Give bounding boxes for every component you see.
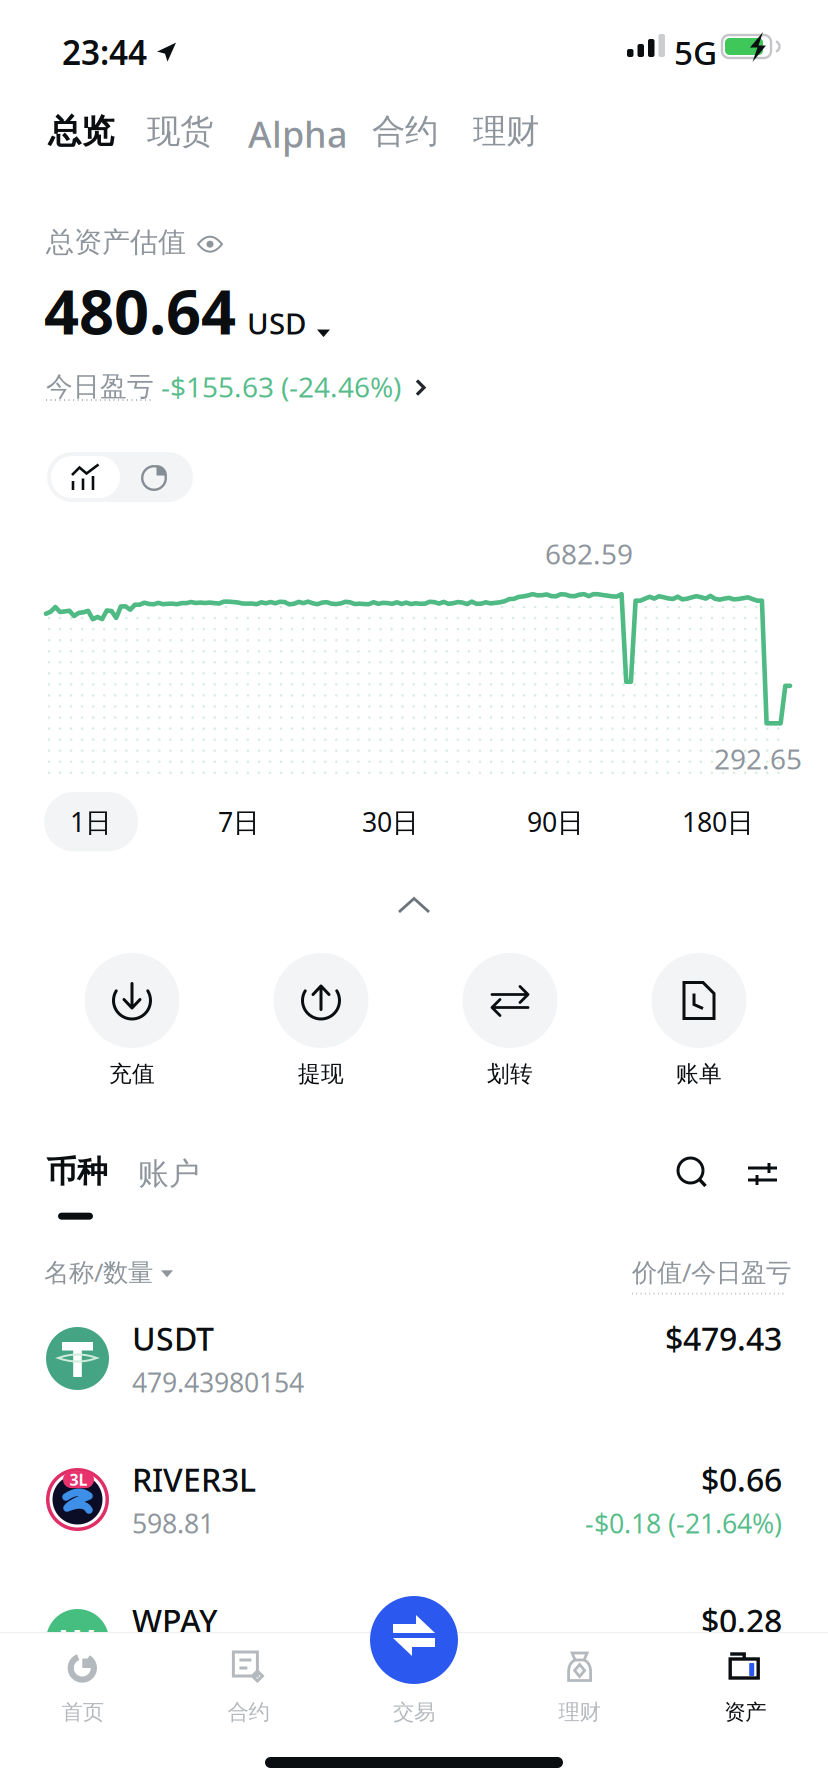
staticText: 90日 — [527, 804, 584, 839]
staticText: 理财 — [473, 111, 539, 152]
button[interactable]: 价值/今日盈亏 — [632, 1255, 791, 1296]
staticText: 3L — [69, 1469, 87, 1490]
staticText: -$0.18 (-21.64%) — [585, 1505, 782, 1541]
button[interactable]: 180日 — [656, 792, 780, 851]
button[interactable]: Filter — [748, 1163, 777, 1185]
button[interactable]: 90日 — [501, 792, 610, 851]
button[interactable]: 充值 — [77, 953, 187, 1088]
button[interactable]: 资产 — [662, 1632, 828, 1792]
button[interactable]: 交易 — [331, 1632, 497, 1792]
button[interactable]: 总览 — [48, 111, 114, 152]
staticText: W — [60, 1617, 94, 1663]
staticText: 币种 — [46, 1153, 108, 1191]
staticText: 充值 — [109, 1060, 155, 1088]
staticText: WPAY — [132, 1599, 218, 1641]
staticText: 现货 — [147, 111, 213, 152]
staticText: 180日 — [682, 804, 754, 839]
button[interactable]: 理财 — [473, 111, 539, 152]
staticText: 交易 — [393, 1699, 435, 1725]
staticText: USDT — [132, 1317, 214, 1359]
staticText: 今日盈亏 — [46, 370, 154, 403]
button[interactable]: Line chart — [51, 456, 120, 498]
button[interactable]: Search — [676, 1156, 706, 1188]
button[interactable]: 现货 — [147, 111, 213, 152]
staticText: 480.64 — [44, 270, 236, 351]
staticText: 账户 — [138, 1155, 200, 1193]
staticText: -$155.63 (-24.46%) — [161, 368, 401, 405]
button[interactable]: 理财 — [497, 1632, 662, 1792]
button[interactable]: 30日 — [336, 792, 445, 851]
staticText: RIVER3L — [132, 1458, 256, 1500]
staticText: 总资产估值 — [46, 225, 186, 259]
staticText: 30日 — [362, 804, 419, 839]
staticText: $0.66 — [701, 1458, 782, 1500]
button[interactable]: 7日 — [192, 792, 286, 851]
staticText: 理财 — [559, 1699, 601, 1725]
staticText: 479.43980154 — [132, 1364, 304, 1400]
button[interactable]: W — [0, 1570, 828, 1711]
button[interactable]: 提现 — [266, 953, 376, 1088]
staticText: 划转 — [487, 1060, 533, 1088]
staticText: 23:44 — [62, 30, 147, 74]
staticText: 合约 — [227, 1699, 269, 1725]
button[interactable]: Alpha — [248, 110, 348, 158]
button[interactable]: 合约 — [372, 111, 438, 152]
button[interactable]: 币种 — [46, 1153, 108, 1220]
staticText: 名称/数量 — [44, 1255, 153, 1289]
staticText: 7日 — [218, 804, 260, 839]
button[interactable]: 名称/数量 — [44, 1255, 173, 1289]
button[interactable]: 账单 — [644, 953, 754, 1088]
button[interactable]: 今日盈亏 — [46, 368, 425, 405]
button[interactable]: 交易 — [370, 1596, 458, 1684]
button[interactable]: 3L — [0, 1429, 828, 1570]
staticText: 合约 — [372, 111, 438, 152]
staticText: 5G — [674, 30, 717, 74]
button[interactable]: 总资产估值 — [46, 225, 223, 259]
staticText: 292.65 — [714, 740, 802, 777]
staticText: 682.59 — [545, 535, 633, 572]
staticText: $479.43 — [665, 1317, 782, 1359]
staticText: Alpha — [248, 110, 348, 158]
staticText: 1日 — [70, 804, 112, 839]
button[interactable]: USDT — [0, 1288, 828, 1429]
staticText: $0.28 — [701, 1599, 782, 1641]
button[interactable]: 1日 — [44, 792, 138, 851]
button[interactable]: Collapse — [384, 884, 444, 926]
staticText: USD — [247, 304, 306, 343]
staticText: 总览 — [48, 111, 114, 152]
staticText: 提现 — [298, 1060, 344, 1088]
staticText: 首页 — [62, 1699, 104, 1725]
button[interactable]: Pie chart — [120, 456, 189, 498]
button[interactable]: 划转 — [455, 953, 565, 1088]
button[interactable]: 首页 — [0, 1632, 166, 1792]
staticText: 资产 — [724, 1699, 766, 1725]
button[interactable]: 账户 — [138, 1155, 200, 1193]
staticText: 598.81 — [132, 1505, 214, 1541]
staticText: 账单 — [676, 1060, 722, 1088]
button[interactable]: 合约 — [166, 1632, 331, 1792]
staticText: 价值/今日盈亏 — [632, 1255, 791, 1289]
